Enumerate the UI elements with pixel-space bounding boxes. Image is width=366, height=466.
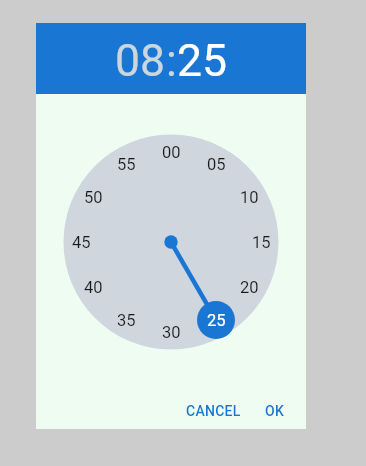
staticText: 30	[162, 323, 181, 342]
button[interactable]: 05	[196, 153, 236, 175]
button[interactable]: CANCEL	[178, 395, 249, 427]
staticText: 40	[84, 278, 103, 297]
staticText: 10	[240, 188, 259, 207]
staticText: 20	[240, 278, 259, 297]
staticText: 25	[177, 35, 228, 87]
staticText: OK	[265, 403, 284, 419]
button[interactable]: 55	[106, 153, 146, 175]
staticText: 50	[84, 188, 103, 207]
button[interactable]: 20	[229, 276, 269, 298]
staticText: 55	[117, 155, 136, 174]
staticText: 35	[117, 311, 136, 330]
staticText: :	[166, 35, 177, 87]
button[interactable]: OK	[257, 395, 292, 427]
staticText: 00	[162, 143, 181, 162]
button[interactable]: 50	[73, 186, 113, 208]
button[interactable]: 00	[151, 141, 191, 163]
staticText: 25	[207, 311, 226, 330]
button[interactable]: 40	[73, 276, 113, 298]
staticText: 05	[207, 155, 226, 174]
button[interactable]: 45	[61, 231, 101, 253]
button[interactable]: 15	[241, 231, 281, 253]
button[interactable]: 25	[196, 309, 236, 331]
button[interactable]: 35	[106, 309, 146, 331]
button[interactable]: 30	[151, 321, 191, 343]
staticText: CANCEL	[186, 403, 241, 419]
staticText: 15	[252, 233, 271, 252]
staticText: 45	[72, 233, 91, 252]
staticText: 08	[115, 35, 166, 87]
button[interactable]: 10	[229, 186, 269, 208]
